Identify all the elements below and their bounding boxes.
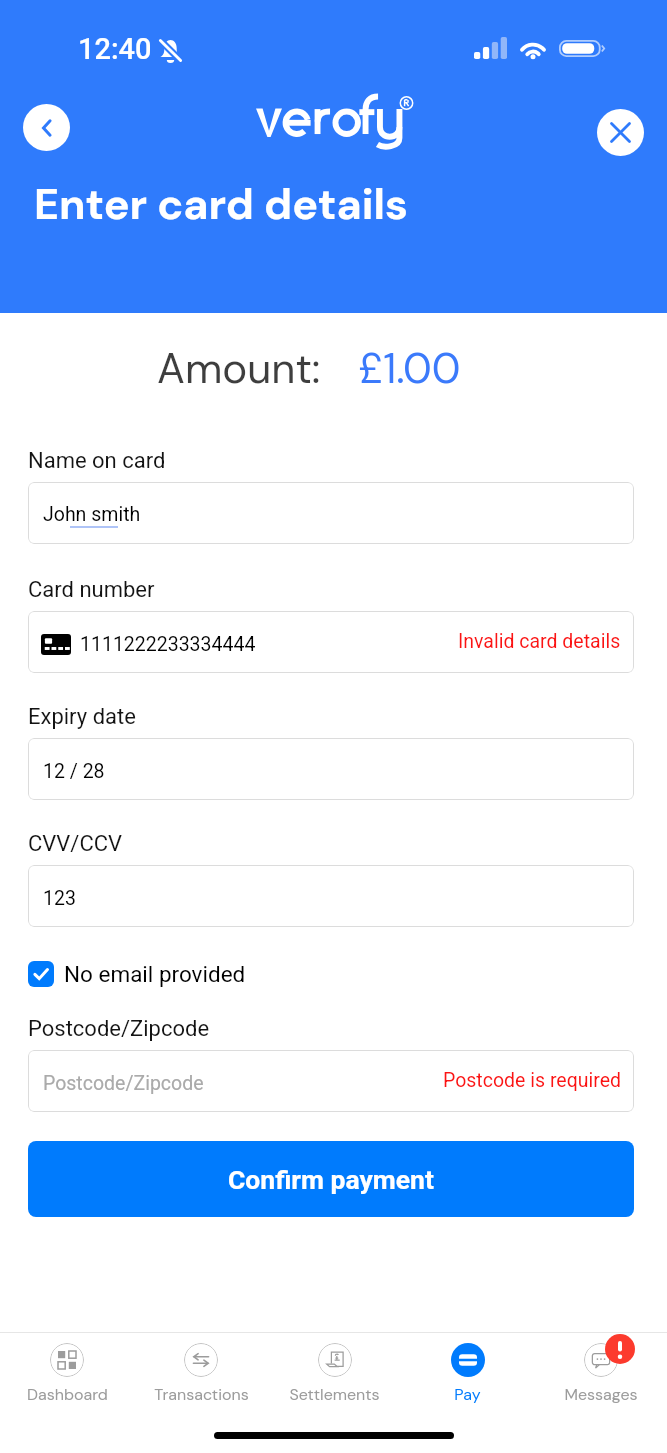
button[interactable]: John smith [28, 482, 634, 544]
staticText: Postcode/Zipcode [43, 1072, 204, 1095]
staticText: 1111222233334444 [80, 633, 256, 656]
button[interactable]: Confirm payment [28, 1141, 634, 1217]
staticText: 123 [43, 887, 76, 910]
button[interactable]: No email provided [28, 961, 246, 987]
button[interactable]: Close [597, 109, 644, 156]
staticText: John smith [43, 503, 141, 526]
button[interactable]: Back [23, 104, 70, 151]
button[interactable]: Pay [401, 1343, 534, 1405]
staticText: Pay [454, 1384, 481, 1405]
staticText: Dashboard [27, 1384, 108, 1405]
staticText: Postcode is required [443, 1069, 621, 1092]
staticText: Card number [28, 577, 155, 603]
staticText: Confirm payment [228, 1164, 434, 1195]
button[interactable]: Messages [534, 1343, 667, 1405]
staticText: Messages [564, 1384, 638, 1405]
staticText: Enter card details [34, 176, 408, 232]
staticText: Postcode/Zipcode [28, 1016, 210, 1042]
button[interactable]: Transactions [134, 1343, 268, 1405]
staticText: 12 / 28 [43, 760, 105, 783]
staticText: Transactions [154, 1384, 249, 1405]
staticText: Amount: [157, 341, 321, 396]
button[interactable]: 12 / 28 [28, 738, 634, 800]
staticText: Invalid card details [458, 630, 621, 653]
staticText: No email provided [64, 961, 246, 987]
button[interactable]: Postcode/Zipcode [28, 1050, 634, 1112]
button[interactable]: Settlements [268, 1343, 401, 1405]
staticText: Expiry date [28, 704, 136, 730]
button[interactable]: 1111222233334444 [28, 611, 634, 673]
staticText: 12:40 [78, 32, 152, 66]
staticText: £1.00 [358, 341, 461, 396]
button[interactable]: 123 [28, 865, 634, 927]
staticText: Settlements [289, 1384, 380, 1405]
staticText: Name on card [28, 448, 166, 474]
button[interactable]: Dashboard [0, 1343, 134, 1405]
staticText: CVV/CCV [28, 831, 123, 857]
